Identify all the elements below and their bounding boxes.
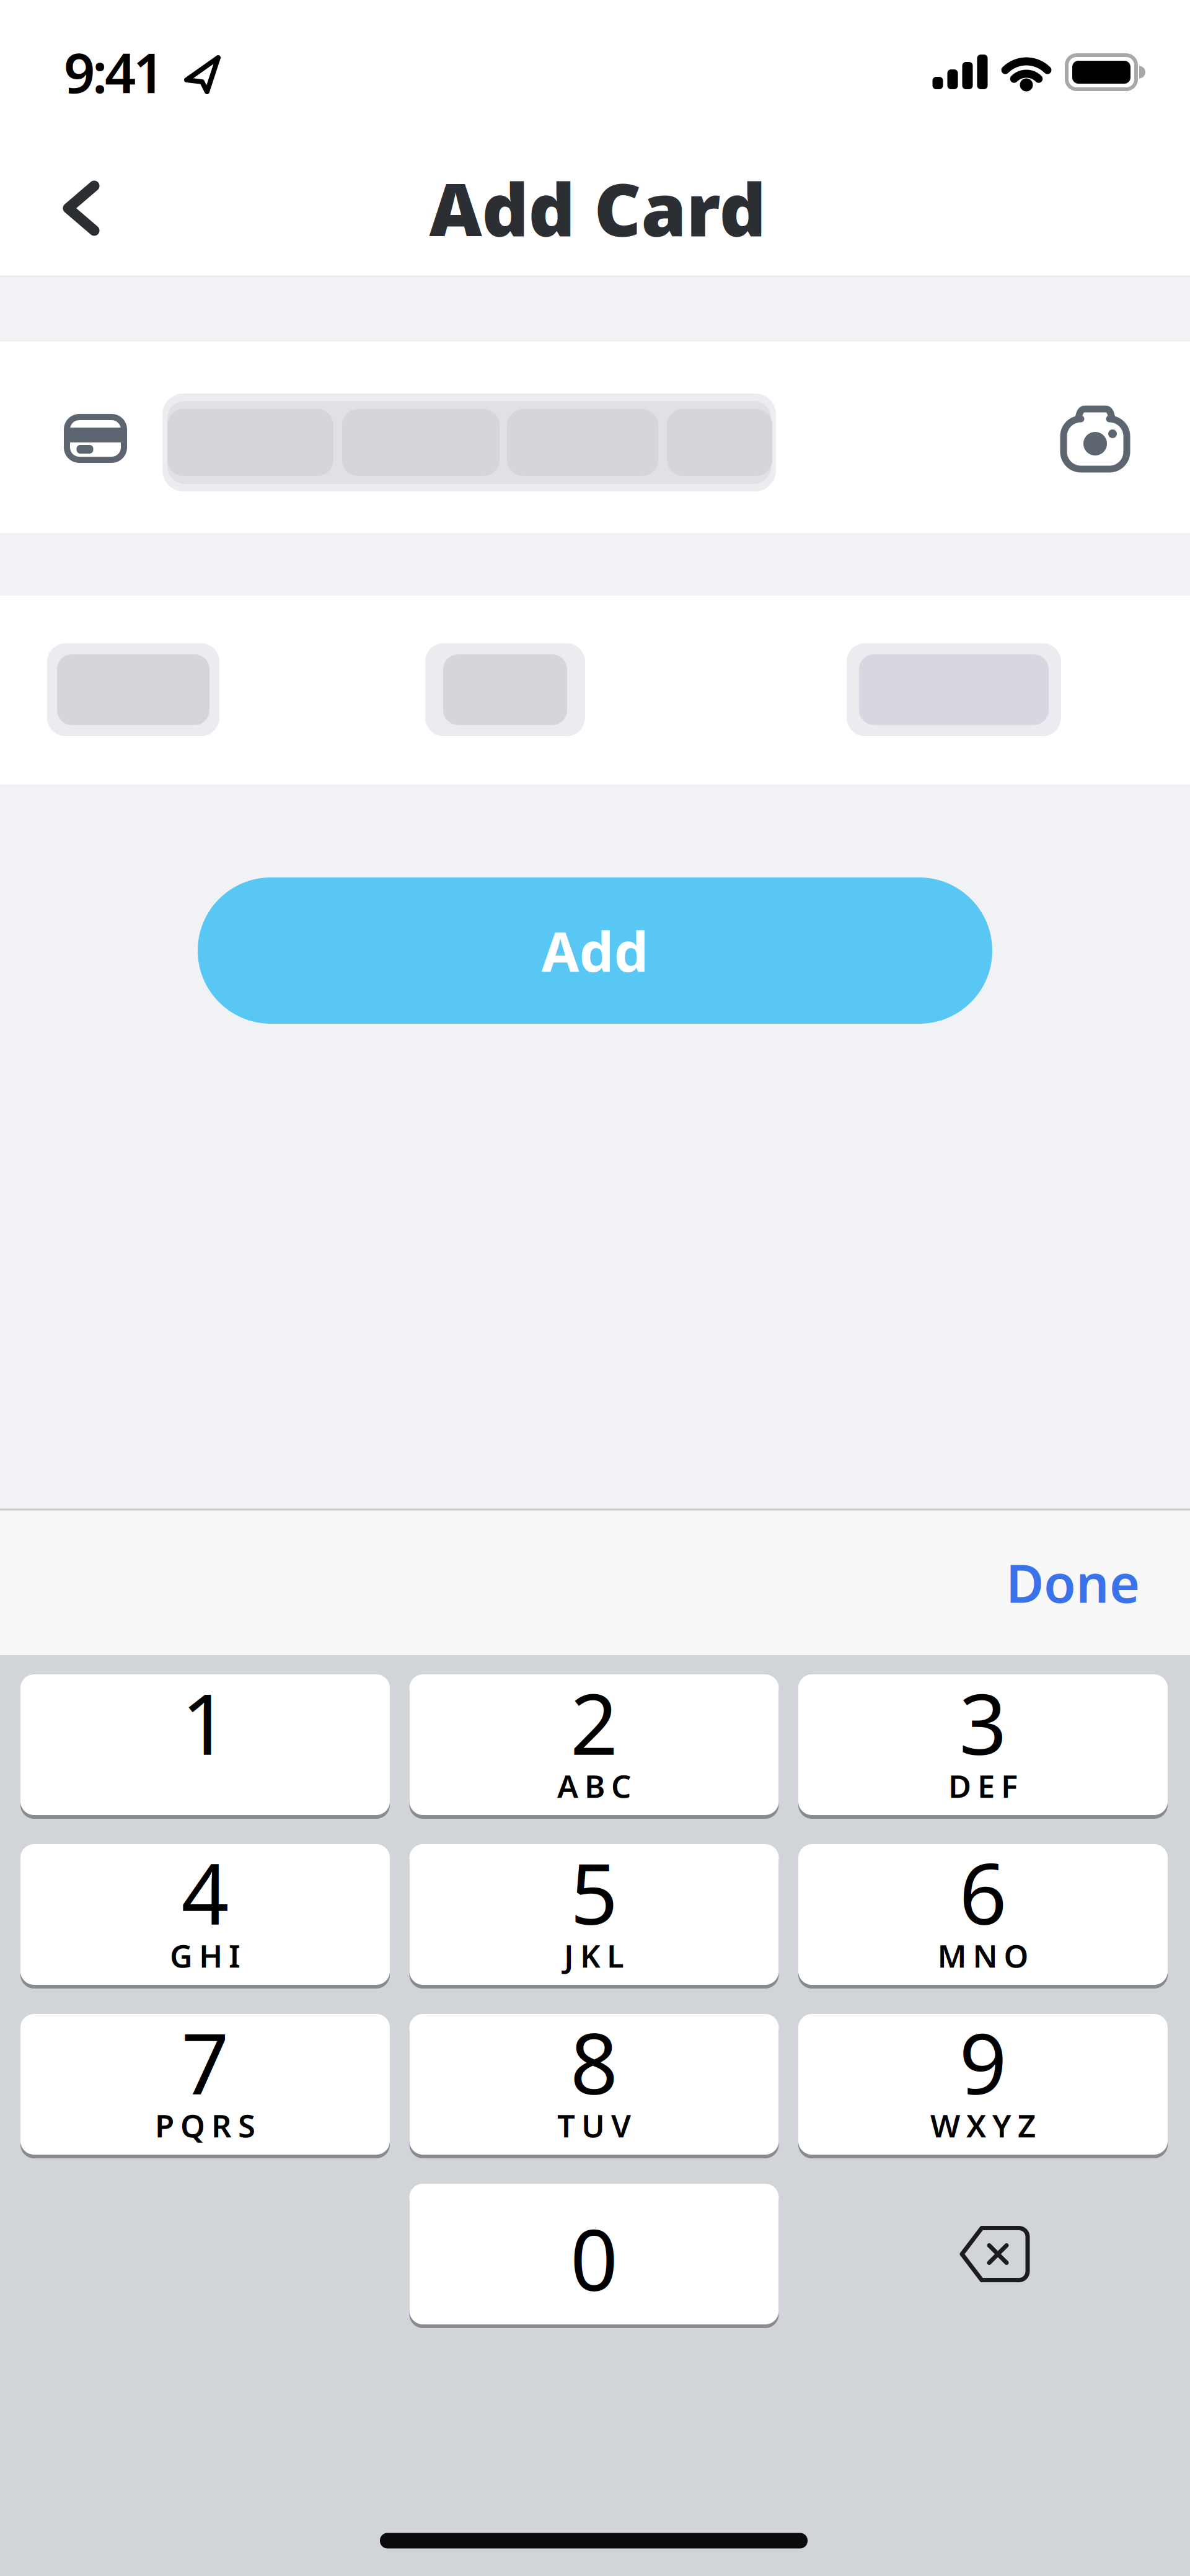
staticText: 2 [570, 1667, 618, 1778]
button[interactable]: Scan card with camera [1046, 390, 1145, 490]
button[interactable]: Add [198, 877, 992, 1024]
staticText: 3 [959, 1667, 1007, 1778]
button[interactable]: Done [980, 1527, 1166, 1638]
button[interactable]: 8 [409, 2010, 779, 2159]
staticText: 0 [570, 2203, 618, 2314]
staticText: WXYZ [930, 2104, 1036, 2146]
staticText: PQRS [155, 2104, 255, 2146]
staticText: JKL [564, 1935, 624, 1976]
staticText: Done [1006, 1548, 1140, 1617]
button[interactable]: 3 [798, 1670, 1168, 1819]
staticText: 1 [181, 1667, 229, 1778]
button[interactable]: 4 [20, 1840, 390, 1989]
button[interactable]: 6 [798, 1840, 1168, 1989]
staticText: DEF [948, 1765, 1018, 1806]
staticText: 7 [181, 2007, 229, 2117]
staticText: 5 [570, 1837, 618, 1948]
staticText: 4 [181, 1837, 229, 1948]
button[interactable]: Back [47, 171, 115, 245]
staticText: TUV [557, 2104, 631, 2146]
button[interactable]: 2 [409, 1670, 779, 1819]
button[interactable]: 7 [20, 2010, 390, 2159]
staticText: Add Card [429, 160, 766, 256]
staticText: 6 [959, 1837, 1007, 1948]
button[interactable]: 0 [409, 2180, 779, 2328]
staticText: MNO [937, 1935, 1029, 1976]
staticText: 8 [570, 2007, 618, 2117]
button[interactable]: Delete [945, 2217, 1044, 2291]
button[interactable]: 9 [798, 2010, 1168, 2159]
button[interactable]: 1 [20, 1670, 390, 1819]
staticText: GHI [170, 1935, 240, 1976]
staticText: ABC [557, 1765, 631, 1806]
staticText: 9 [959, 2007, 1007, 2117]
staticText: Add [541, 914, 649, 987]
staticText: 9:41 [64, 36, 164, 108]
button[interactable]: 5 [409, 1840, 779, 1989]
